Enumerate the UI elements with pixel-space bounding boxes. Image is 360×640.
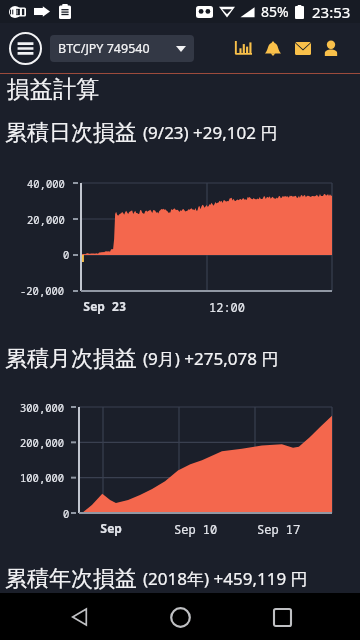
staticText: Sep 23 [83,298,127,314]
staticText: 0 [63,507,70,521]
button[interactable]: Recents [259,594,305,640]
staticText: 20,000 [27,213,65,227]
staticText: 損益計算 [7,75,99,104]
staticText: Sep 17 [257,521,301,537]
staticText: -20,000 [20,284,65,298]
button[interactable]: Notifications [256,31,290,65]
staticText: Sep [100,520,122,536]
staticText: 300,000 [20,401,65,415]
staticText: 23:53 [312,2,351,22]
staticText: 100,000 [20,471,65,485]
staticText: 12:00 [209,299,246,315]
button[interactable]: Menu [7,30,43,66]
staticText: (2018年) +459,119 円 [143,567,308,590]
staticText: 累積年次損益 [5,565,137,593]
staticText: (9/23) +29,102 円 [143,121,278,144]
staticText: 0 [63,248,70,262]
button[interactable]: Charts [226,31,260,65]
button[interactable]: Back [56,594,102,640]
button[interactable]: Messages [286,31,320,65]
staticText: 40,000 [27,177,65,191]
button[interactable]: Account [314,31,348,65]
staticText: Sep 10 [174,521,218,537]
staticText: (9月) +275,078 円 [143,347,279,370]
staticText: 累積日次損益 [5,119,137,147]
staticText: 累積月次損益 [5,345,137,373]
button[interactable]: BTC/JPY 749540 [50,35,194,62]
staticText: 85% [261,2,289,21]
staticText: 200,000 [20,436,65,450]
button[interactable]: Home [157,594,203,640]
staticText: BTC/JPY 749540 [58,40,150,57]
